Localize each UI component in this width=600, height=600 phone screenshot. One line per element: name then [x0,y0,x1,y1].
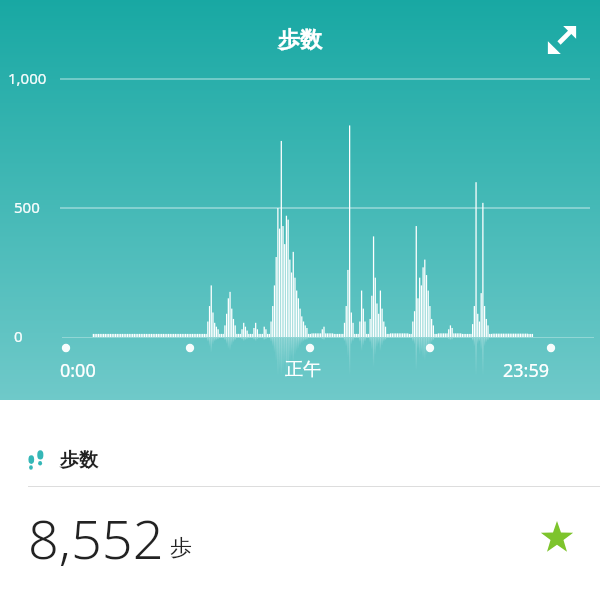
staticText: 0:00 [60,358,96,383]
staticText: 8,552 [28,501,164,575]
staticText: 500 [14,197,40,217]
staticText: 歩 [170,534,192,562]
staticText: 1,000 [8,68,47,88]
staticText: 歩数 [60,448,98,472]
staticText: 正午 [285,358,321,381]
button[interactable]: 歩数 [0,400,600,575]
button[interactable]: Expand chart [538,16,586,64]
staticText: 23:59 [503,358,550,383]
staticText: 歩数 [278,26,322,54]
staticText: 0 [14,326,23,346]
